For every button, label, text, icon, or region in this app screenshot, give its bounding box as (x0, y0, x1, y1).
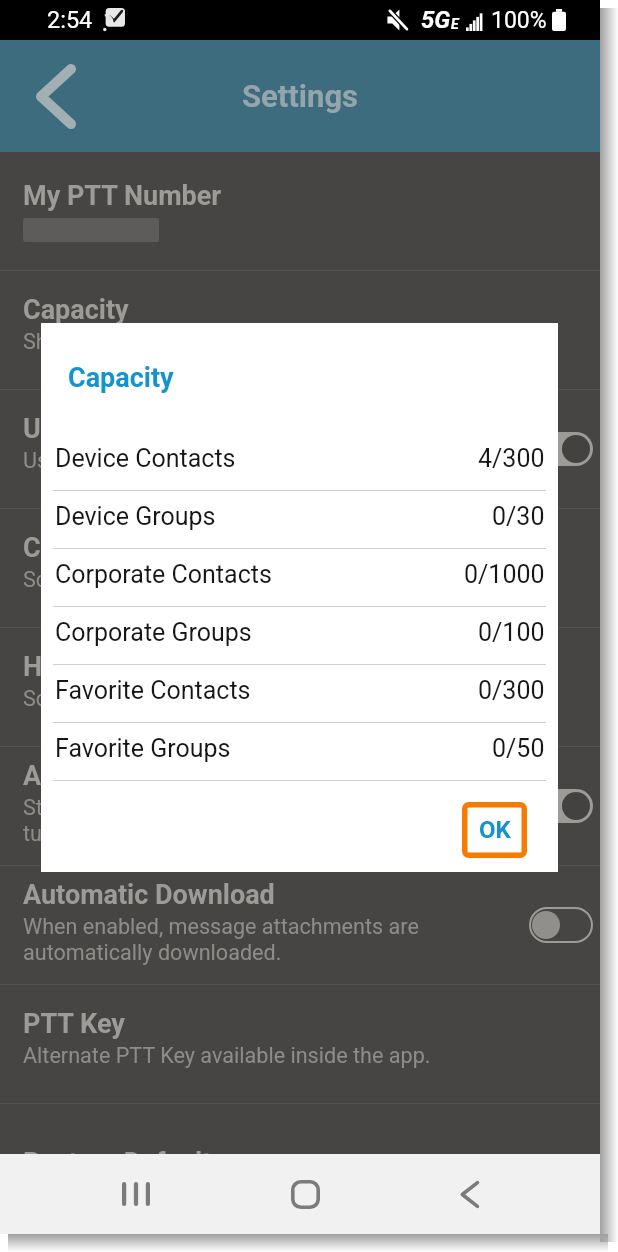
staticText: 0/1000 (464, 560, 545, 589)
staticText: E (451, 16, 459, 32)
staticText: Corporate Groups (55, 618, 252, 647)
button[interactable]: Recent apps (79, 1154, 192, 1234)
staticText: Us (23, 413, 55, 445)
staticText: Capacity (23, 294, 129, 326)
button[interactable]: OK (462, 802, 527, 858)
staticText: Favorite Groups (55, 734, 231, 763)
staticText: Sh (23, 329, 48, 354)
staticText: 2:54 (47, 6, 93, 34)
staticText: St tu (23, 795, 43, 846)
staticText: Capacity (68, 362, 174, 394)
staticText: 4/300 (478, 444, 545, 473)
staticText: 5G (421, 6, 451, 34)
staticText: 0/50 (492, 734, 545, 763)
staticText: PTT Key (23, 1008, 125, 1040)
button[interactable]: H (0, 628, 600, 746)
staticText: H (23, 651, 43, 683)
button[interactable]: Capacity (0, 271, 600, 389)
staticText: Alternate PTT Key available inside the a… (23, 1043, 431, 1068)
staticText: Favorite Contacts (55, 676, 251, 705)
staticText: Device Contacts (55, 444, 236, 473)
staticText: Settings (242, 78, 359, 114)
staticText: Device Groups (55, 502, 216, 531)
button[interactable]: A (0, 747, 600, 865)
button[interactable]: Toggle off (529, 907, 593, 943)
button[interactable]: Restore Defaults (0, 1104, 600, 1222)
button[interactable]: Us (0, 390, 600, 508)
staticText: 0/100 (478, 618, 545, 647)
staticText: Sc (23, 567, 48, 592)
staticText: Sc (23, 686, 48, 711)
staticText: 0/300 (478, 676, 545, 705)
button[interactable]: Toggle on (529, 789, 593, 823)
staticText: Automatic Download (23, 879, 275, 911)
button[interactable]: Toggle on (529, 432, 593, 466)
staticText: OK (479, 816, 511, 844)
staticText: My PTT Number (23, 180, 222, 212)
staticText: Restore Defaults (23, 1147, 226, 1179)
staticText: A (23, 760, 42, 792)
staticText: Corporate Contacts (55, 560, 272, 589)
staticText: 100% (491, 7, 547, 34)
button[interactable]: Back (413, 1154, 526, 1234)
staticText: Us (23, 448, 49, 473)
staticText: 0/30 (492, 502, 545, 531)
button[interactable]: Back (0, 40, 100, 152)
button[interactable]: C (0, 509, 600, 627)
button[interactable]: My PTT Number (0, 152, 600, 270)
button[interactable]: PTT Key (0, 985, 600, 1103)
staticText: When enabled, message attachments are au… (23, 914, 419, 965)
staticText: C (23, 532, 41, 564)
button[interactable]: Home (249, 1154, 362, 1234)
button[interactable]: Automatic Download (0, 866, 600, 984)
